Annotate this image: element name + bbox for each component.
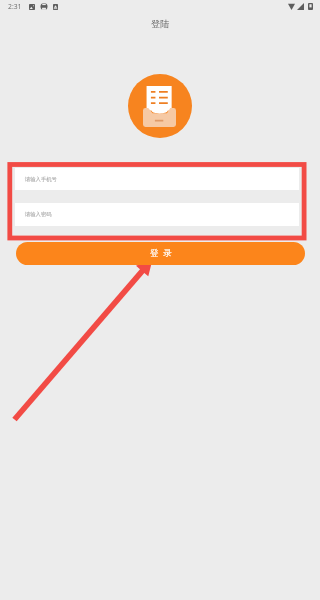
button[interactable]: 登 录 — [16, 242, 305, 265]
staticText: 登 录 — [150, 247, 172, 259]
staticText: 登陆 — [151, 18, 170, 30]
staticText: 2:31 — [8, 2, 22, 11]
button[interactable]: 请输入手机号 — [15, 168, 299, 190]
staticText: 请输入密码 — [25, 211, 52, 218]
staticText: 请输入手机号 — [25, 176, 57, 183]
button[interactable]: 请输入密码 — [15, 203, 299, 226]
